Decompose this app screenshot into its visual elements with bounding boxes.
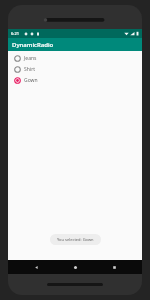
button[interactable]: Recent apps bbox=[103, 260, 125, 274]
button[interactable]: Back bbox=[25, 260, 47, 274]
staticText: Shirt bbox=[24, 66, 35, 73]
button[interactable]: Shirt bbox=[8, 64, 142, 75]
staticText: DynamicRadio bbox=[12, 41, 54, 49]
button[interactable]: Home bbox=[64, 260, 86, 274]
staticText: Jeans bbox=[24, 55, 37, 62]
button[interactable]: Jeans bbox=[8, 53, 142, 64]
staticText: Gown bbox=[24, 77, 38, 84]
button[interactable]: Gown bbox=[8, 75, 142, 86]
staticText: You selected: Gown bbox=[57, 237, 94, 242]
staticText: 6:21 bbox=[11, 31, 19, 36]
